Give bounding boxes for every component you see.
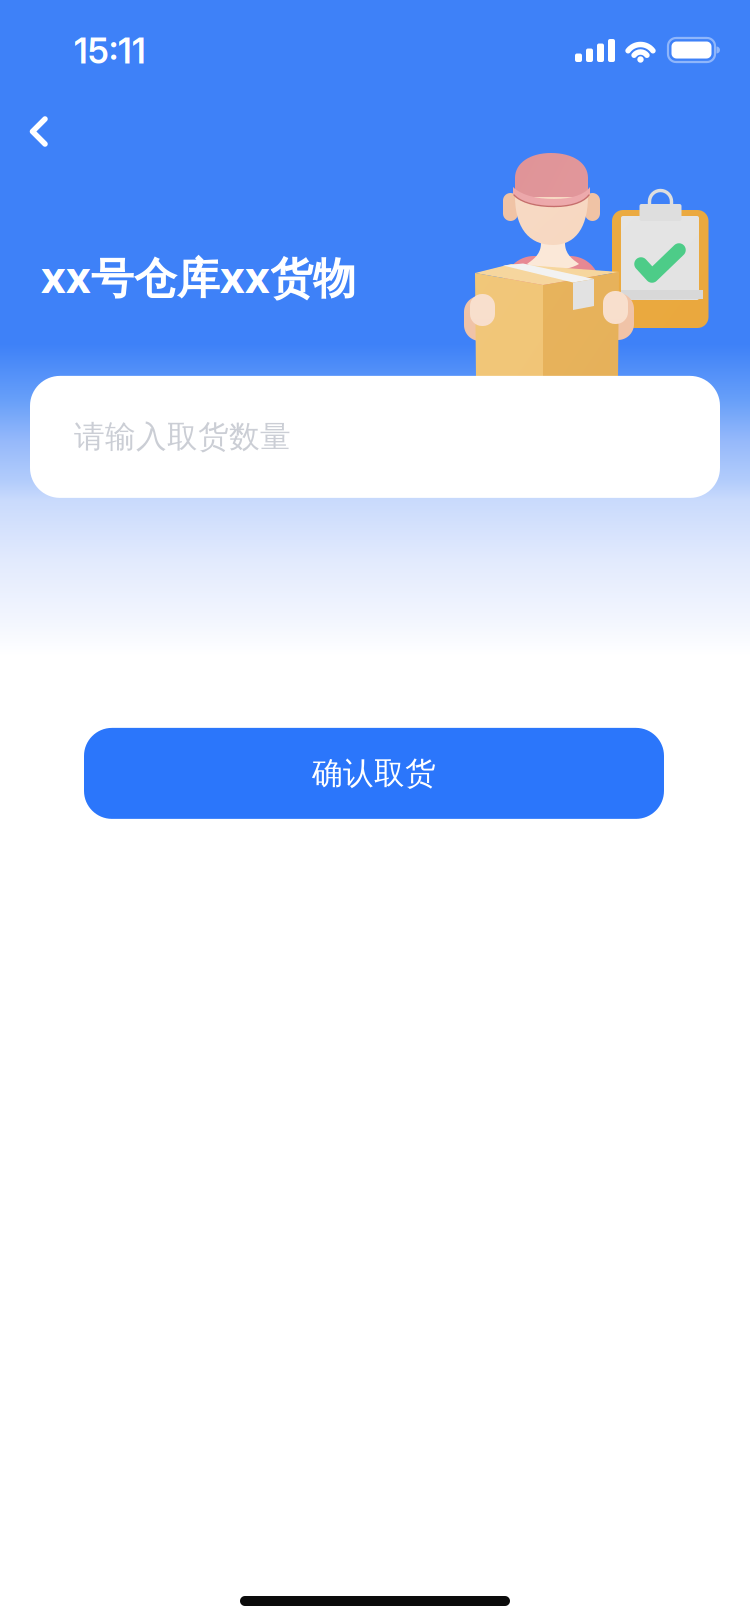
button[interactable]: 确认取货 xyxy=(84,728,664,819)
staticText: 15:11 xyxy=(74,30,146,72)
staticText: 请输入取货数量 xyxy=(74,418,291,456)
button[interactable]: 请输入取货数量 xyxy=(30,376,720,498)
staticText: xx号仓库xx货物 xyxy=(41,248,356,305)
button[interactable]: Back xyxy=(14,108,80,160)
staticText: 确认取货 xyxy=(312,754,436,792)
